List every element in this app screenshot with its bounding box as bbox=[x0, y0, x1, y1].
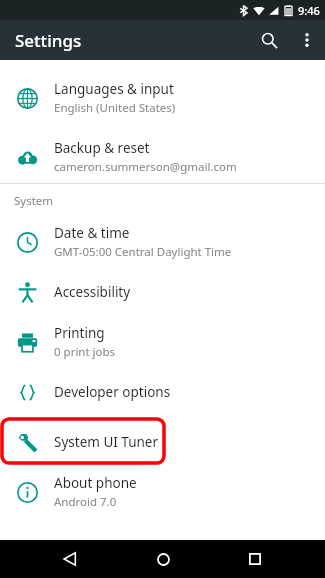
staticText: Settings bbox=[15, 29, 82, 52]
button[interactable]: Accessibility bbox=[0, 267, 325, 317]
staticText: System bbox=[14, 193, 54, 209]
staticText: cameron.summerson@gmail.com bbox=[54, 159, 237, 175]
button[interactable]: About phone bbox=[0, 467, 325, 517]
button[interactable]: Backup & reset bbox=[0, 132, 325, 182]
button[interactable]: Printing bbox=[0, 317, 325, 367]
staticText: Date & time bbox=[54, 224, 130, 242]
button[interactable]: Recents bbox=[233, 540, 277, 578]
staticText: About phone bbox=[54, 474, 137, 492]
staticText: 9:46 bbox=[298, 3, 320, 18]
staticText: Printing bbox=[54, 324, 105, 342]
staticText: Backup & reset bbox=[54, 139, 150, 157]
button[interactable]: Languages & input bbox=[0, 64, 325, 132]
button[interactable]: Search bbox=[249, 20, 289, 60]
staticText: Accessibility bbox=[54, 283, 131, 301]
staticText: GMT-05:00 Central Daylight Time bbox=[54, 244, 232, 260]
staticText: Developer options bbox=[54, 383, 171, 401]
button[interactable]: System UI Tuner bbox=[0, 417, 325, 467]
button[interactable]: Home bbox=[141, 540, 185, 578]
button[interactable]: More options bbox=[289, 22, 325, 58]
button[interactable]: Back bbox=[48, 540, 92, 578]
staticText: English (United States) bbox=[54, 100, 176, 116]
button[interactable]: Date & time bbox=[0, 217, 325, 267]
staticText: 0 print jobs bbox=[54, 344, 116, 360]
staticText: Android 7.0 bbox=[54, 494, 117, 510]
staticText: Languages & input bbox=[54, 80, 174, 98]
button[interactable]: Developer options bbox=[0, 367, 325, 417]
staticText: System UI Tuner bbox=[54, 433, 159, 451]
